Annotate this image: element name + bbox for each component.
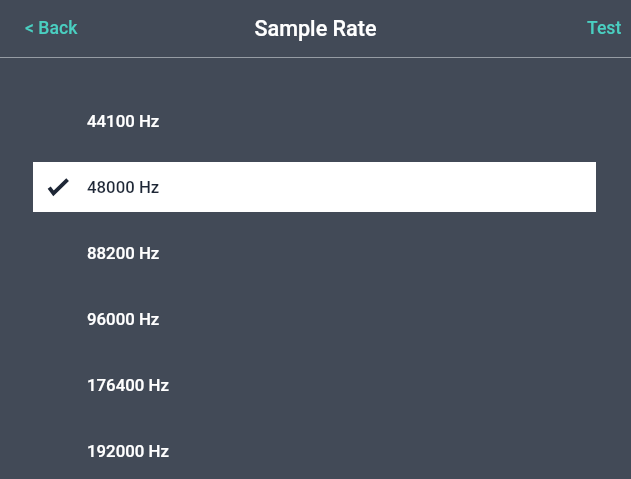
button[interactable]: 176400 Hz <box>0 352 631 418</box>
staticText: 192000 Hz <box>87 441 169 461</box>
button[interactable]: 44100 Hz <box>0 88 631 154</box>
button[interactable]: 96000 Hz <box>0 286 631 352</box>
other: Selected <box>46 177 70 197</box>
button[interactable]: 192000 Hz <box>0 418 631 479</box>
staticText: 44100 Hz <box>87 111 160 131</box>
staticText: < Back <box>25 18 78 39</box>
button[interactable]: Test <box>573 7 631 50</box>
staticText: Test <box>587 18 622 39</box>
button[interactable]: < Back <box>11 7 92 50</box>
staticText: 176400 Hz <box>87 375 169 395</box>
staticText: Sample Rate <box>254 16 377 41</box>
staticText: 96000 Hz <box>87 309 160 329</box>
button[interactable]: Selected <box>0 154 631 220</box>
staticText: 48000 Hz <box>87 177 160 197</box>
button[interactable]: 88200 Hz <box>0 220 631 286</box>
staticText: 88200 Hz <box>87 243 160 263</box>
